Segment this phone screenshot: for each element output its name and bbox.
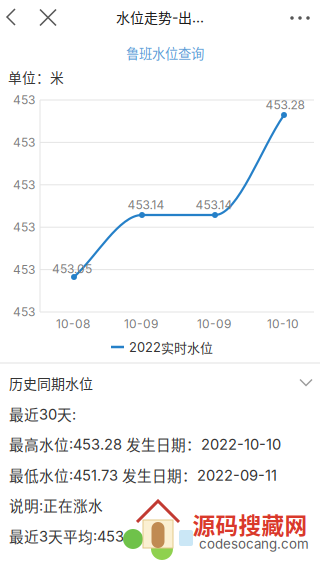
staticText: 453 [13, 262, 35, 277]
staticText: 10-10 [267, 317, 299, 331]
staticText: 453.28 [265, 98, 304, 112]
staticText: 最高水位:453.28 发生日期：2022-10-10 [9, 433, 281, 455]
staticText: 10-08 [56, 317, 90, 331]
button[interactable]: Back [0, 0, 34, 34]
staticText: 鲁班水位查询 [126, 43, 204, 63]
staticText: 453 [13, 93, 35, 107]
staticText: 453 [13, 305, 35, 319]
staticText: 说明:正在涨水 [9, 494, 103, 516]
staticText: 最近30天: [9, 403, 76, 425]
staticText: 单位：米 [8, 67, 64, 87]
staticText: 10-09 [197, 317, 231, 331]
staticText: codesocang.com [199, 536, 309, 552]
staticText: 453.05 [52, 262, 92, 276]
staticText: 源码搜藏网 [192, 508, 307, 540]
button[interactable]: 历史同期水位 [0, 368, 320, 398]
staticText: 453 [13, 135, 35, 150]
staticText: 最低水位:451.73 发生日期：2022-09-11 [9, 464, 277, 486]
staticText: 最近3天平均:453.1 [9, 525, 133, 547]
staticText: 历史同期水位 [9, 373, 93, 393]
staticText: 453 [13, 177, 35, 192]
button[interactable]: More [281, 3, 319, 33]
staticText: 453.14 [195, 198, 232, 212]
button[interactable]: Close [31, 0, 65, 34]
staticText: 453 [13, 220, 35, 234]
staticText: 水位走势-出... [116, 7, 204, 27]
staticText: 453.14 [127, 198, 164, 212]
staticText: 10-09 [124, 317, 158, 331]
button[interactable]: 鲁班水位查询 [126, 43, 204, 63]
staticText: 2022实时水位 [129, 338, 213, 356]
